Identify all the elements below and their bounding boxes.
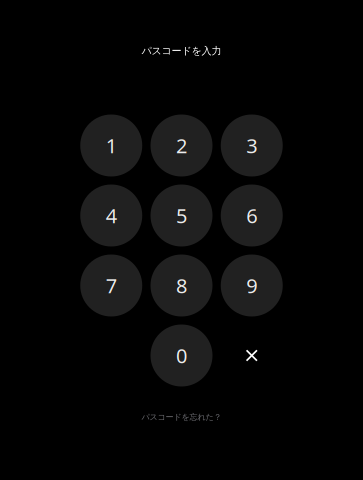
staticText: 9 xyxy=(246,272,257,299)
staticText: 0 xyxy=(176,342,187,369)
staticText: 4 xyxy=(106,202,117,229)
staticText: パスコードを入力 xyxy=(141,45,221,57)
button[interactable]: 3 xyxy=(221,114,283,176)
staticText: 5 xyxy=(176,202,187,229)
staticText: 8 xyxy=(176,272,187,299)
staticText: 6 xyxy=(246,202,257,229)
staticText: パスコードを忘れた？ xyxy=(141,412,221,422)
button[interactable]: 7 xyxy=(80,254,142,316)
button[interactable]: 4 xyxy=(80,184,142,246)
button[interactable]: 5 xyxy=(150,184,212,246)
button[interactable]: 9 xyxy=(221,254,283,316)
button[interactable]: 2 xyxy=(150,114,212,176)
button[interactable]: 8 xyxy=(150,254,212,316)
staticText: 7 xyxy=(106,272,117,299)
button[interactable]: 0 xyxy=(150,324,212,386)
button[interactable]: 6 xyxy=(221,184,283,246)
button[interactable]: 1 xyxy=(80,114,142,176)
staticText: 1 xyxy=(106,132,117,159)
button[interactable]: 削除 xyxy=(221,324,283,386)
staticText: 2 xyxy=(176,132,187,159)
button[interactable]: パスコードを忘れた？ xyxy=(141,412,221,422)
staticText: 3 xyxy=(246,132,257,159)
